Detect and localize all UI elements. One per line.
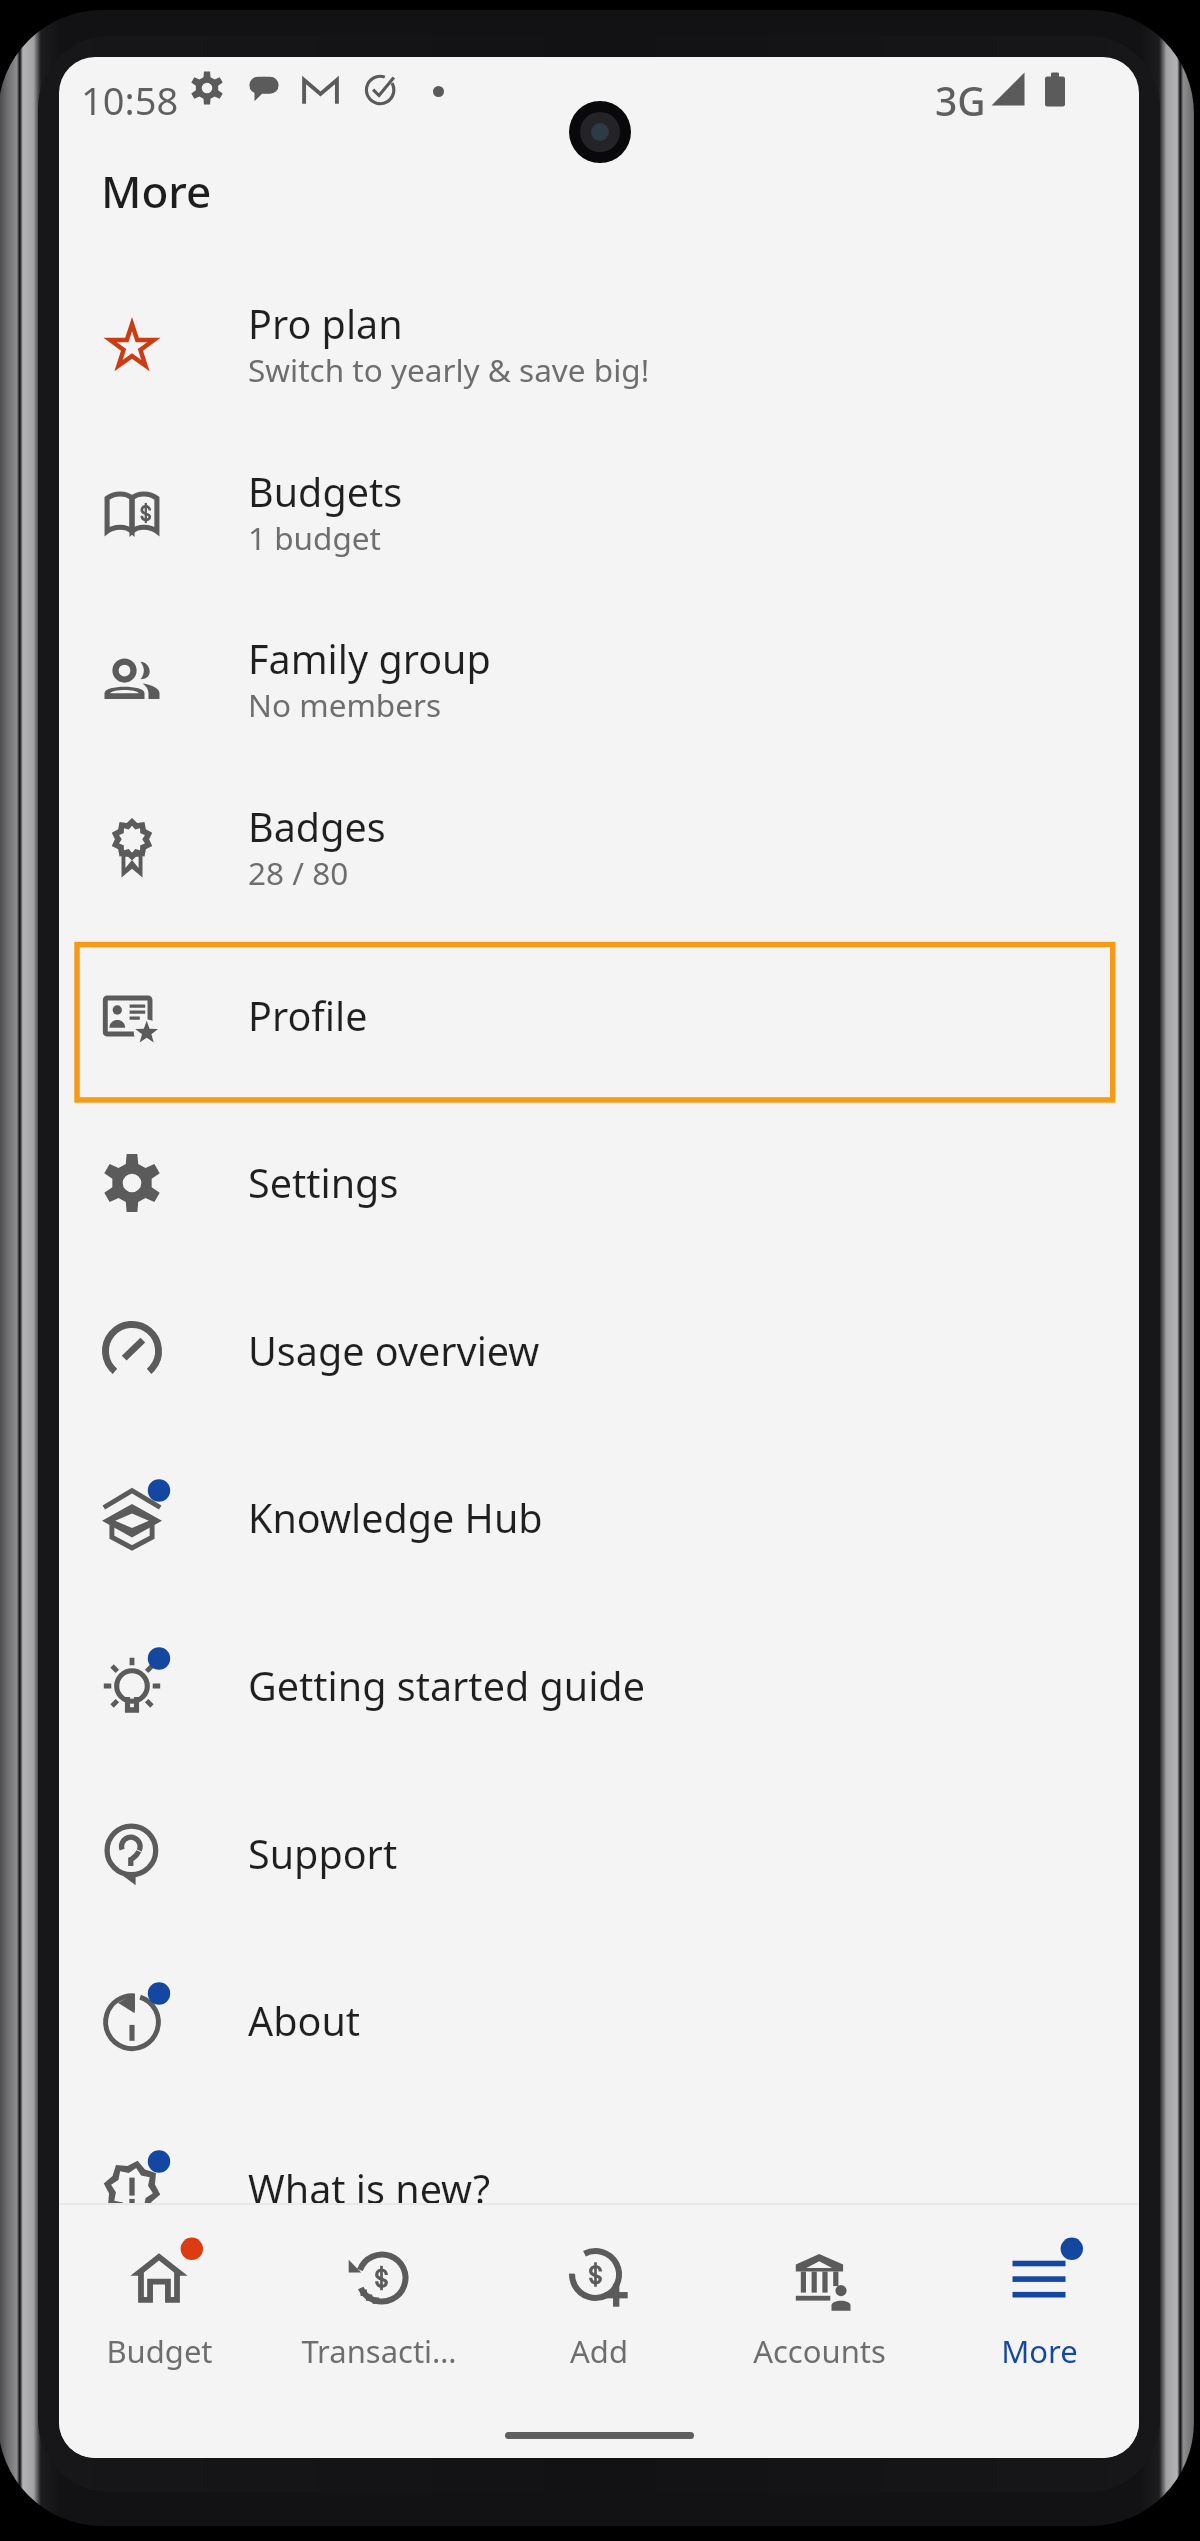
staticText: 10:58 bbox=[81, 74, 179, 126]
staticText: Switch to yearly & save big! bbox=[248, 348, 650, 391]
button[interactable]: Accounts bbox=[712, 2207, 926, 2392]
button[interactable]: Settings bbox=[59, 1099, 1139, 1267]
staticText: Support bbox=[248, 1827, 398, 1881]
button[interactable]: Badges bbox=[59, 764, 1139, 932]
button[interactable]: Support bbox=[59, 1770, 1139, 1938]
staticText: Budget bbox=[106, 2330, 213, 2372]
button[interactable]: Pro plan bbox=[59, 261, 1139, 429]
staticText: 3G bbox=[935, 74, 986, 127]
button[interactable]: Transacti… bbox=[272, 2207, 486, 2392]
button[interactable]: Usage overview bbox=[59, 1267, 1139, 1435]
button[interactable]: Add bbox=[492, 2207, 706, 2392]
staticText: Profile bbox=[248, 989, 368, 1043]
staticText: Badges bbox=[248, 800, 386, 854]
button[interactable]: What is new? bbox=[59, 2105, 1139, 2273]
staticText: Family group bbox=[248, 632, 491, 686]
staticText: Pro plan bbox=[248, 297, 403, 351]
staticText: Budgets bbox=[248, 465, 403, 519]
staticText: More bbox=[1001, 2330, 1078, 2372]
staticText: 28 / 80 bbox=[248, 851, 349, 894]
staticText: What is new? bbox=[248, 2162, 491, 2216]
button[interactable]: Knowledge Hub bbox=[59, 1434, 1139, 1602]
button[interactable]: Budgets bbox=[59, 429, 1139, 597]
staticText: About bbox=[248, 1994, 361, 2048]
button[interactable]: Budget bbox=[59, 2207, 266, 2392]
staticText: Accounts bbox=[753, 2330, 886, 2372]
button[interactable]: Profile bbox=[59, 932, 1139, 1100]
button[interactable]: Getting started guide bbox=[59, 1602, 1139, 1770]
staticText: Usage overview bbox=[248, 1324, 540, 1378]
button[interactable]: Family group bbox=[59, 596, 1139, 764]
button[interactable]: About bbox=[59, 1937, 1139, 2105]
staticText: 1 budget bbox=[248, 516, 381, 559]
staticText: Transacti… bbox=[301, 2330, 457, 2372]
staticText: Knowledge Hub bbox=[248, 1491, 543, 1545]
button[interactable]: More bbox=[932, 2207, 1139, 2392]
staticText: Add bbox=[570, 2330, 628, 2372]
staticText: More bbox=[101, 161, 212, 221]
staticText: Settings bbox=[248, 1156, 399, 1210]
staticText: No members bbox=[248, 683, 442, 726]
staticText: Getting started guide bbox=[248, 1659, 645, 1713]
